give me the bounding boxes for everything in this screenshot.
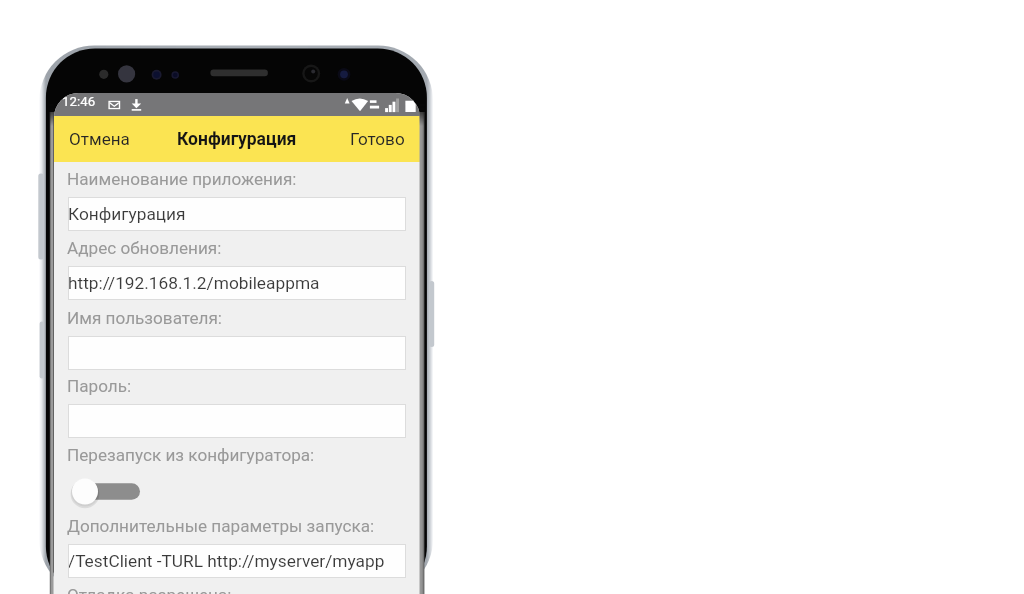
button[interactable]: http://192.168.1.2/mobileappma bbox=[68, 266, 406, 300]
button[interactable]: Перезапуск из конфигуратора bbox=[60, 470, 150, 508]
button[interactable]: Отмена bbox=[54, 119, 144, 159]
staticText: Наименование приложения: bbox=[67, 169, 297, 189]
staticText: Готово bbox=[350, 129, 405, 149]
staticText: Перезапуск из конфигуратора: bbox=[67, 445, 315, 465]
staticText: Пароль: bbox=[67, 376, 132, 396]
staticText: Конфигурация bbox=[177, 129, 297, 150]
staticText: Отмена bbox=[69, 129, 130, 149]
staticText: /TestClient -TURL http://myserver/myapp bbox=[68, 551, 385, 571]
button[interactable] bbox=[68, 404, 406, 438]
staticText: Адрес обновления: bbox=[67, 238, 222, 258]
staticText: Конфигурация bbox=[68, 204, 186, 224]
staticText: Отладка разрешена: bbox=[67, 585, 232, 594]
staticText: Имя пользователя: bbox=[67, 308, 222, 328]
staticText: http://192.168.1.2/mobileappma bbox=[68, 273, 320, 293]
button[interactable] bbox=[68, 336, 406, 370]
button[interactable]: Готово bbox=[336, 119, 420, 159]
staticText: Дополнительные параметры запуска: bbox=[67, 516, 375, 536]
button[interactable]: Конфигурация bbox=[68, 197, 406, 231]
staticText: 12:46 bbox=[62, 94, 96, 110]
button[interactable]: /TestClient -TURL http://myserver/myapp bbox=[68, 544, 406, 578]
